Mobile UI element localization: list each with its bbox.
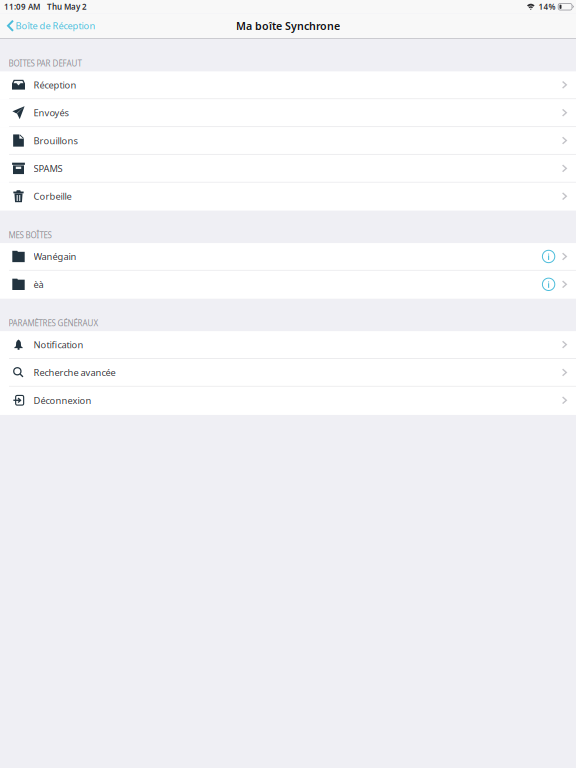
staticText: Ma boîte Synchrone	[236, 19, 340, 33]
staticText: SPAMS	[33, 162, 62, 175]
staticText: Thu May 2	[47, 1, 87, 12]
button[interactable]: Notification	[0, 331, 576, 359]
staticText: Réception	[33, 79, 76, 91]
button[interactable]: Envoyés	[0, 99, 576, 127]
staticText: èà	[33, 278, 43, 290]
button[interactable]: èà	[0, 271, 576, 299]
staticText: Recherche avancée	[33, 366, 115, 379]
button[interactable]: SPAMS	[0, 155, 576, 183]
button[interactable]: Wanégain	[0, 243, 576, 271]
staticText: 11:09 AM	[4, 1, 40, 12]
staticText: Wanégain	[33, 250, 76, 263]
staticText: Notification	[33, 338, 83, 351]
staticText: Déconnexion	[33, 394, 91, 406]
staticText: Envoyés	[33, 106, 68, 119]
button[interactable]: Réception	[0, 71, 576, 99]
button[interactable]: Recherche avancée	[0, 359, 576, 387]
staticText: Corbeille	[33, 190, 71, 202]
button[interactable]: Corbeille	[0, 183, 576, 211]
button[interactable]: Déconnexion	[0, 387, 576, 415]
button[interactable]: Brouillons	[0, 127, 576, 155]
staticText: MES BOÎTES	[9, 230, 52, 240]
staticText: Boîte de Réception	[15, 20, 95, 32]
staticText: BOÎTES PAR DÉFAUT	[9, 58, 82, 69]
staticText: Brouillons	[33, 134, 77, 147]
staticText: PARAMÈTRES GÉNÉRAUX	[9, 318, 99, 328]
staticText: 14%	[539, 1, 556, 12]
button[interactable]: Boîte de Réception	[0, 17, 95, 35]
